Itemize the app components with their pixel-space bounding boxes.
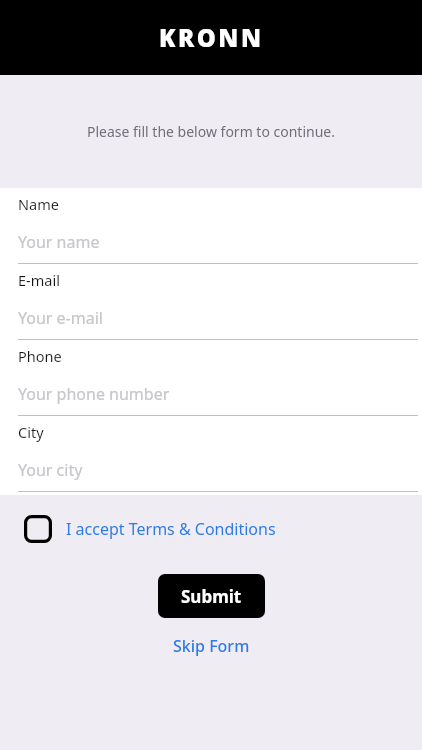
staticText: E-mail <box>18 270 60 290</box>
button[interactable]: Accept Terms and Conditions checkbox <box>24 515 52 543</box>
staticText: Your e-mail <box>18 307 103 329</box>
staticText: Skip Form <box>173 635 250 657</box>
staticText: I accept Terms & Conditions <box>66 518 276 540</box>
button[interactable]: E-mail <box>0 264 422 340</box>
staticText: Your name <box>18 231 100 253</box>
button[interactable]: Accept Terms and Conditions checkbox <box>0 509 422 549</box>
staticText: Phone <box>18 346 62 366</box>
staticText: KRONN <box>159 21 264 54</box>
staticText: Your city <box>18 459 83 481</box>
staticText: Your phone number <box>18 383 170 405</box>
button[interactable]: Phone <box>0 340 422 416</box>
button[interactable]: Submit <box>158 574 265 618</box>
button[interactable]: City <box>0 416 422 492</box>
staticText: Please fill the below form to continue. <box>87 122 335 141</box>
staticText: City <box>18 422 44 442</box>
button[interactable]: Skip Form <box>161 629 262 663</box>
button[interactable]: Name <box>0 188 422 264</box>
staticText: Submit <box>181 585 242 608</box>
staticText: Name <box>18 194 59 214</box>
